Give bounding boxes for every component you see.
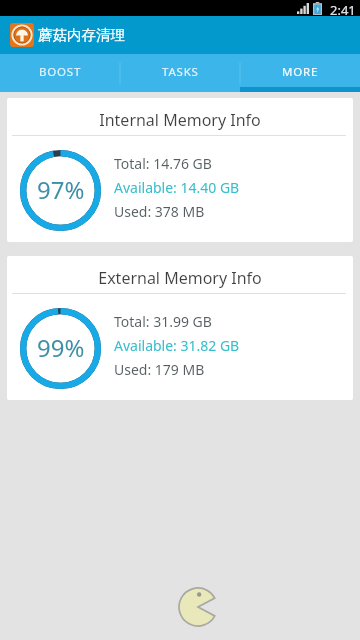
button[interactable]: MORE: [240, 54, 360, 92]
button[interactable]: External Memory Info: [7, 256, 353, 400]
staticText: Available: 31.82 GB: [114, 336, 240, 355]
staticText: Available: 14.40 GB: [114, 178, 240, 197]
staticText: TASKS: [162, 64, 199, 80]
staticText: Used: 179 MB: [114, 360, 205, 379]
staticText: BOOST: [39, 64, 82, 80]
other: App logo: [10, 23, 34, 47]
staticText: Internal Memory Info: [7, 109, 353, 131]
button[interactable]: BOOST: [0, 54, 120, 92]
staticText: Total: 14.76 GB: [114, 154, 212, 173]
button[interactable]: TASKS: [120, 54, 240, 92]
staticText: 蘑菇内存清理: [38, 26, 125, 44]
button[interactable]: Internal Memory Info: [7, 98, 353, 242]
staticText: 97%: [37, 173, 85, 206]
staticText: External Memory Info: [7, 267, 353, 289]
staticText: Used: 378 MB: [114, 202, 205, 221]
staticText: 2:41: [330, 1, 356, 17]
staticText: 99%: [37, 331, 85, 364]
staticText: MORE: [282, 64, 319, 80]
staticText: Total: 31.99 GB: [114, 312, 212, 331]
